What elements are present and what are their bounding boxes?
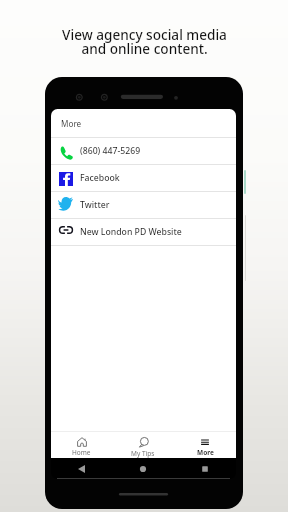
staticText: More xyxy=(197,448,214,457)
button[interactable]: Home xyxy=(51,432,112,458)
staticText: Home xyxy=(72,448,91,457)
button[interactable]: New London PD Website xyxy=(51,219,236,245)
button[interactable]: Back xyxy=(51,458,112,479)
button[interactable]: My Tips xyxy=(112,432,174,458)
button[interactable]: Recent apps xyxy=(174,458,236,479)
staticText: Facebook xyxy=(80,172,120,184)
staticText: New London PD Website xyxy=(80,226,182,238)
staticText: My Tips xyxy=(131,449,155,458)
button[interactable]: More xyxy=(174,432,236,458)
staticText: More xyxy=(61,118,82,129)
staticText: Twitter xyxy=(80,199,110,211)
button[interactable]: (860) 447-5269 xyxy=(51,138,236,164)
button[interactable]: Twitter xyxy=(51,192,236,218)
staticText: (860) 447-5269 xyxy=(80,145,141,157)
button[interactable]: Home xyxy=(112,458,174,479)
button[interactable]: Facebook xyxy=(51,165,236,191)
staticText: View agency social media and online cont… xyxy=(62,25,227,58)
